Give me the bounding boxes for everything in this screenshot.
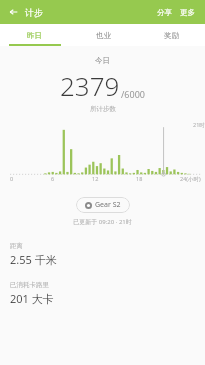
staticText: 18 [136, 175, 143, 182]
staticText: 奖励 [164, 31, 179, 40]
button[interactable]: Gear S2 [76, 197, 130, 213]
staticText: 距离 [10, 242, 23, 250]
staticText: 分享 [157, 8, 172, 17]
staticText: 0 [10, 175, 14, 182]
staticText: 24(小时) [180, 175, 201, 183]
button[interactable]: 分享 [153, 5, 176, 20]
staticText: 21时 [193, 121, 205, 129]
staticText: 12 [92, 175, 99, 182]
button[interactable]: 奖励 [137, 24, 205, 46]
staticText: 更多 [180, 8, 195, 17]
staticText: 已消耗卡路里 [10, 281, 49, 289]
staticText: 2379 [60, 68, 120, 103]
staticText: 2.55 千米 [10, 252, 57, 267]
staticText: 201 大卡 [10, 291, 54, 306]
staticText: 已更新于 09:20 · 21时 [0, 218, 205, 226]
staticText: 6 [51, 175, 55, 182]
button[interactable]: 也业 [69, 24, 137, 46]
staticText: Gear S2 [95, 200, 121, 210]
staticText: 今日 [95, 56, 110, 65]
button[interactable]: Back [6, 5, 20, 19]
button[interactable]: 更多 [176, 5, 199, 20]
staticText: 计步 [25, 7, 43, 18]
staticText: 所计步数 [90, 105, 116, 113]
staticText: /6000 [121, 88, 145, 100]
staticText: 也业 [96, 31, 111, 40]
button[interactable]: 昨日 [0, 24, 69, 46]
staticText: 昨日 [27, 31, 42, 40]
